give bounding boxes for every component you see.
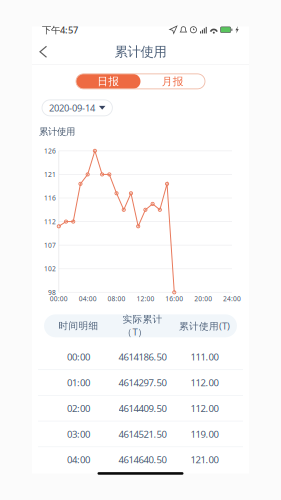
staticText: 累计使用 — [39, 126, 75, 137]
staticText: 4614640.50 — [118, 453, 166, 466]
staticText: 4614297.50 — [118, 376, 166, 389]
button[interactable]: 2020-09-14 — [42, 100, 112, 116]
staticText: 116 — [44, 194, 56, 202]
staticText: 121.00 — [190, 453, 218, 466]
staticText: 107 — [44, 241, 56, 250]
staticText: 24:00 — [223, 294, 241, 303]
staticText: 112 — [44, 217, 56, 226]
staticText: 下午4:57 — [42, 24, 78, 36]
staticText: 126 — [44, 146, 56, 155]
staticText: 2020-09-14 — [49, 102, 95, 114]
staticText: 12:00 — [136, 294, 154, 303]
staticText: 实际累计（T） — [122, 313, 162, 338]
staticText: 02:00 — [67, 402, 90, 415]
staticText: 4614521.50 — [118, 427, 166, 440]
staticText: 日报 — [97, 75, 119, 88]
staticText: 112.00 — [190, 376, 218, 389]
staticText: 03:00 — [67, 427, 90, 440]
staticText: 111.00 — [190, 350, 218, 363]
staticText: 20:00 — [194, 294, 212, 303]
staticText: 119.00 — [190, 427, 218, 440]
staticText: 01:00 — [67, 376, 90, 389]
staticText: 08:00 — [107, 294, 125, 303]
staticText: 00:00 — [67, 350, 90, 363]
button[interactable]: Back — [32, 40, 55, 63]
button[interactable]: 月报 — [140, 74, 205, 89]
staticText: 04:00 — [67, 453, 90, 466]
button[interactable]: 日报 — [76, 74, 140, 89]
staticText: 121 — [44, 170, 56, 179]
staticText: 112.00 — [190, 402, 218, 415]
staticText: 102 — [44, 264, 56, 273]
staticText: 98 — [48, 288, 56, 297]
staticText: 月报 — [162, 75, 184, 88]
staticText: 累计使用 — [114, 44, 166, 60]
staticText: 时间明细 — [58, 320, 98, 332]
staticText: 4614409.50 — [118, 402, 166, 415]
staticText: 累计使用(T) — [179, 319, 230, 332]
staticText: 04:00 — [79, 294, 97, 303]
staticText: 00:00 — [50, 294, 68, 303]
staticText: 16:00 — [165, 294, 183, 303]
staticText: 4614186.50 — [118, 350, 166, 363]
